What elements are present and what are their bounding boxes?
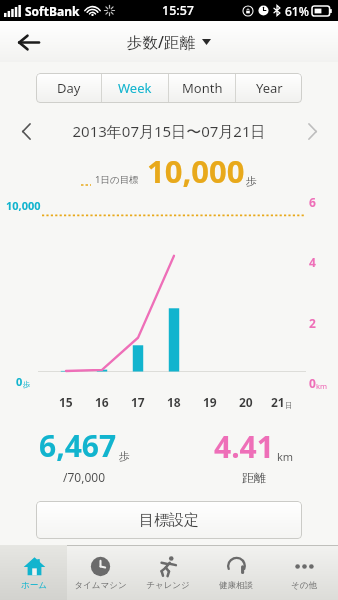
staticText: 1日の目標 — [95, 173, 139, 186]
button[interactable]: Week — [102, 73, 168, 103]
staticText: 19 — [203, 394, 217, 410]
staticText: チャレンジ — [146, 580, 190, 591]
button[interactable]: Previous week — [10, 116, 40, 146]
staticText: 0 — [309, 375, 316, 391]
staticText: 61% — [285, 3, 309, 19]
staticText: 距離 — [242, 470, 266, 485]
button[interactable]: Year — [236, 73, 302, 103]
button[interactable]: 歩数/距離 — [127, 31, 211, 52]
staticText: 4.41 — [214, 426, 274, 467]
staticText: 20 — [239, 394, 253, 410]
staticText: 17 — [131, 394, 145, 410]
button[interactable]: Month — [169, 73, 235, 103]
staticText: その他 — [291, 580, 317, 591]
button[interactable]: Back — [8, 22, 48, 62]
button[interactable]: 健康相談 — [202, 545, 270, 600]
staticText: 21 — [271, 394, 285, 410]
staticText: 16 — [95, 394, 109, 410]
staticText: 15:57 — [162, 2, 195, 19]
staticText: タイムマシン — [74, 580, 127, 591]
staticText: Month — [182, 79, 223, 97]
button[interactable]: Next week — [298, 116, 328, 146]
staticText: 2013年07月15日〜07月21日 — [40, 121, 298, 141]
staticText: 10,000 — [6, 198, 41, 213]
staticText: Week — [118, 79, 152, 97]
staticText: ホーム — [21, 580, 47, 591]
staticText: Year — [256, 79, 283, 97]
staticText: km — [277, 449, 294, 464]
button[interactable]: Day — [36, 73, 101, 103]
staticText: /70,000 — [63, 469, 106, 485]
button[interactable]: その他 — [270, 545, 338, 600]
staticText: Day — [57, 79, 81, 97]
staticText: 歩 — [246, 174, 257, 188]
button[interactable]: チャレンジ — [134, 545, 202, 600]
staticText: 目標設定 — [139, 511, 199, 530]
staticText: km — [316, 381, 328, 391]
staticText: 歩 — [119, 449, 130, 463]
button[interactable]: タイムマシン — [67, 545, 134, 600]
staticText: SoftBank — [25, 3, 80, 19]
staticText: 4 — [309, 254, 316, 270]
staticText: 6 — [309, 194, 316, 210]
staticText: 健康相談 — [219, 580, 253, 591]
staticText: 2 — [309, 315, 316, 331]
staticText: 6,467 — [39, 425, 117, 466]
button[interactable]: 目標設定 — [36, 501, 302, 539]
button[interactable]: ホーム — [0, 545, 67, 600]
staticText: 0 — [16, 374, 23, 389]
staticText: 18 — [167, 394, 181, 410]
staticText: 歩 — [23, 380, 31, 389]
staticText: 15 — [59, 394, 73, 410]
staticText: 日 — [285, 401, 293, 410]
staticText: 10,000 — [147, 150, 245, 192]
staticText: 歩数/距離 — [127, 31, 195, 52]
